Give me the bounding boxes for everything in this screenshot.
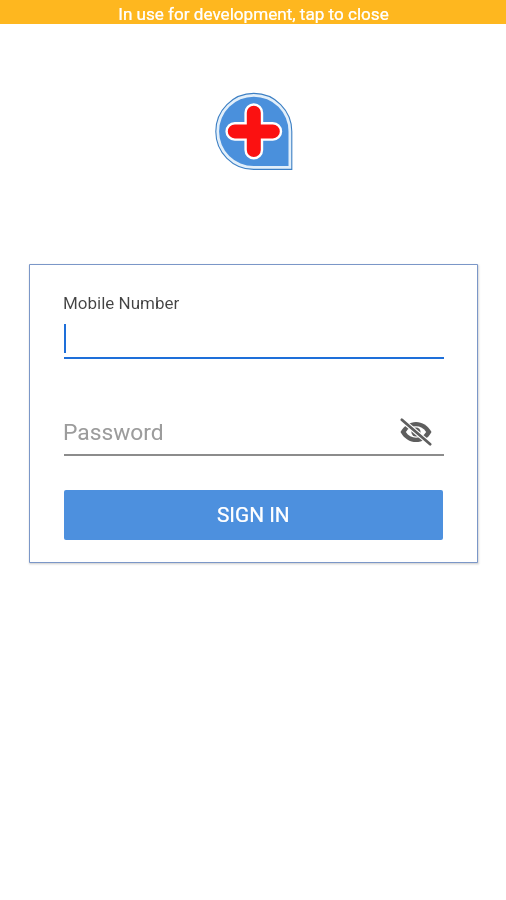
button[interactable]: In use for development, tap to close xyxy=(0,0,506,24)
button[interactable]: Password xyxy=(64,410,444,456)
staticText: Password xyxy=(63,419,164,446)
staticText: Mobile Number xyxy=(63,293,180,313)
button[interactable]: SIGN IN xyxy=(64,490,443,540)
staticText: SIGN IN xyxy=(217,503,290,527)
button[interactable]: Mobile Number xyxy=(64,287,444,359)
staticText: In use for development, tap to close xyxy=(118,4,389,24)
button[interactable]: Show password xyxy=(394,410,438,454)
